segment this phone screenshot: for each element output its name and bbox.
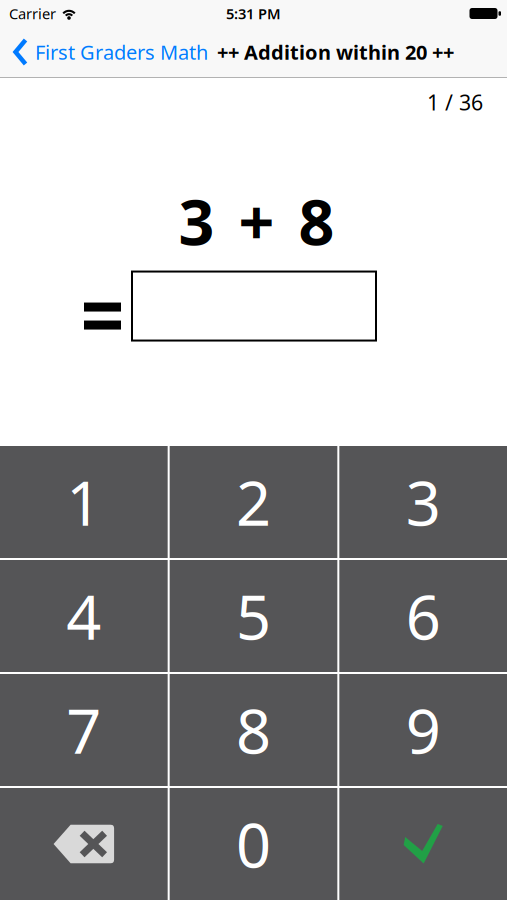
staticText: First Graders Math <box>35 39 208 65</box>
button[interactable]: 6 <box>339 560 507 672</box>
button[interactable]: 0 <box>170 788 337 900</box>
staticText: 1 <box>66 461 101 543</box>
staticText: 1 / 36 <box>427 88 483 116</box>
staticText: 5:31 PM <box>226 4 281 23</box>
staticText: 5 <box>236 575 271 657</box>
staticText: Carrier <box>9 4 56 23</box>
button[interactable]: 9 <box>339 674 507 786</box>
staticText: 2 <box>236 461 271 543</box>
button[interactable]: 3 <box>339 446 507 558</box>
staticText: ++ Addition within 20 ++ <box>217 39 454 65</box>
staticText: 3 + 8 <box>178 179 334 262</box>
staticText: 0 <box>236 803 271 885</box>
button[interactable]: 8 <box>170 674 337 786</box>
staticText: 9 <box>406 689 441 771</box>
button[interactable]: 4 <box>0 560 168 672</box>
staticText: 7 <box>66 689 101 771</box>
staticText: 4 <box>66 575 101 657</box>
button[interactable]: 1 <box>0 446 168 558</box>
button[interactable]: 2 <box>170 446 337 558</box>
button[interactable]: First Graders Math <box>0 39 208 65</box>
staticText: 8 <box>236 689 271 771</box>
button[interactable] <box>339 788 507 900</box>
button[interactable]: 5 <box>170 560 337 672</box>
staticText: 6 <box>406 575 441 657</box>
button[interactable]: 7 <box>0 674 168 786</box>
button[interactable] <box>0 788 168 900</box>
staticText: 3 <box>406 461 441 543</box>
